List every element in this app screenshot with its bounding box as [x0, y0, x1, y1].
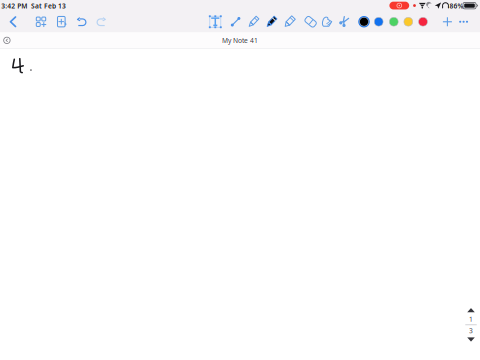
button[interactable]: Add template: [32, 12, 49, 32]
button[interactable]: More: [457, 12, 470, 32]
button[interactable]: Pen: [264, 12, 279, 32]
staticText: My Note 41: [222, 36, 258, 45]
button[interactable]: Eraser: [303, 12, 318, 32]
button[interactable]: Back: [5, 12, 20, 32]
button[interactable]: Red: [416, 12, 429, 32]
button[interactable]: Next page: [463, 335, 479, 344]
staticText: Sat Feb 13: [31, 1, 66, 10]
button[interactable]: Smudge: [319, 12, 334, 32]
staticText: 1: [469, 315, 473, 324]
button[interactable]: Cut: [337, 12, 351, 32]
button[interactable]: Yellow: [402, 12, 415, 32]
staticText: 86%: [450, 1, 464, 10]
button[interactable]: Pencil: [246, 12, 261, 32]
button[interactable]: Text tool: [207, 12, 224, 32]
staticText: 3:42 PM: [1, 1, 27, 10]
button[interactable]: Add colour: [441, 12, 454, 32]
button[interactable]: Redo: [92, 12, 109, 32]
button[interactable]: Undo: [73, 12, 90, 32]
button[interactable]: New page: [53, 12, 70, 32]
button[interactable]: Previous page: [463, 306, 479, 315]
button[interactable]: Show sidebar: [0, 34, 13, 47]
button[interactable]: Highlighter: [282, 12, 297, 32]
button[interactable]: Line tool: [228, 12, 243, 32]
staticText: 3: [469, 326, 473, 335]
button[interactable]: Green: [387, 12, 400, 32]
button[interactable]: Blue: [372, 12, 385, 32]
button[interactable]: Black: [357, 12, 371, 32]
